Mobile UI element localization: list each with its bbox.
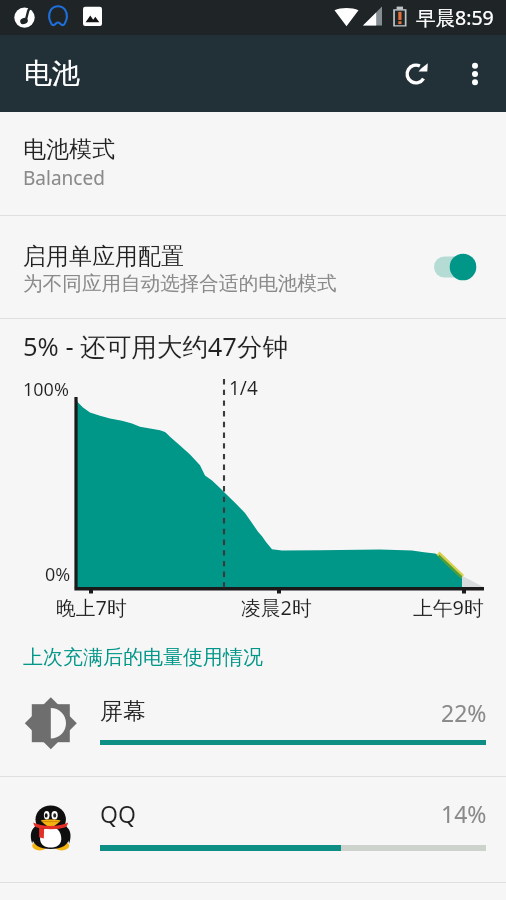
staticText: 1/4: [229, 375, 258, 401]
staticText: 0%: [45, 562, 71, 587]
button[interactable]: 上次充满后的电量使用情况: [23, 645, 263, 670]
staticText: 为不同应用自动选择合适的电池模式: [23, 271, 337, 296]
staticText: 早晨8:59: [416, 4, 494, 31]
staticText: QQ: [100, 798, 136, 829]
staticText: 14%: [441, 798, 487, 829]
staticText: 5% - 还可用大约47分钟: [23, 329, 288, 364]
staticText: 电池模式: [23, 135, 115, 164]
button[interactable]: [429, 244, 491, 290]
staticText: 电池: [24, 56, 80, 91]
staticText: 屏幕: [100, 697, 146, 726]
staticText: 晚上7时: [56, 594, 127, 621]
staticText: 上午9时: [413, 594, 484, 621]
staticText: 100%: [23, 377, 69, 402]
staticText: 启用单应用配置: [23, 242, 184, 271]
button[interactable]: 屏幕: [0, 672, 506, 776]
staticText: 凌晨2时: [241, 594, 312, 621]
staticText: Balanced: [23, 165, 105, 191]
staticText: 22%: [441, 697, 487, 728]
staticText: 上次充满后的电量使用情况: [23, 645, 263, 670]
button[interactable]: More options: [451, 50, 499, 98]
button[interactable]: 电池模式: [0, 112, 506, 215]
button[interactable]: Refresh: [392, 50, 440, 98]
button[interactable]: QQ: [0, 777, 506, 882]
button[interactable]: 启用单应用配置: [0, 216, 506, 318]
